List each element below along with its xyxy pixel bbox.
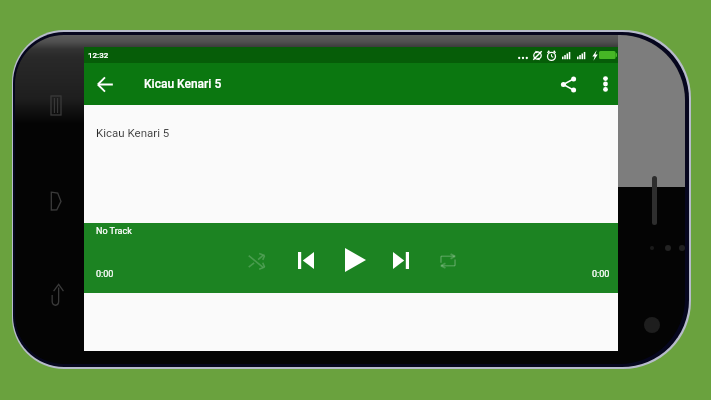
staticText: Kicau Kenari 5 bbox=[144, 77, 222, 91]
button[interactable]: More options bbox=[590, 69, 620, 99]
button[interactable]: Shuffle bbox=[244, 248, 270, 274]
staticText: 12:32 bbox=[88, 51, 109, 60]
staticText: 0:00 bbox=[592, 269, 610, 280]
button[interactable]: Play bbox=[339, 242, 372, 278]
button[interactable]: Navigate up bbox=[86, 65, 124, 103]
button[interactable]: Next bbox=[388, 248, 413, 273]
button[interactable]: Recents bbox=[42, 87, 70, 124]
button[interactable]: Previous bbox=[293, 248, 318, 273]
button[interactable]: Home bbox=[41, 277, 70, 312]
button[interactable]: Back bbox=[41, 183, 69, 218]
staticText: No Track bbox=[96, 226, 132, 237]
staticText: 0:00 bbox=[96, 269, 114, 280]
button[interactable]: Share bbox=[550, 66, 587, 103]
staticText: Kicau Kenari 5 bbox=[96, 126, 170, 139]
button[interactable]: Repeat bbox=[436, 249, 460, 273]
